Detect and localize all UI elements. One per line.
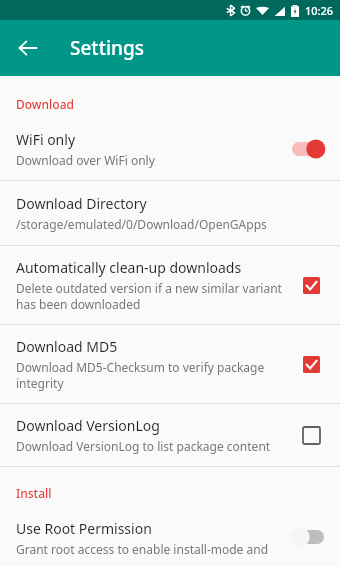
staticText: 10:26 [305,3,334,18]
staticText: Download Directory [16,194,147,213]
button[interactable]: Unchecked [298,422,324,448]
staticText: Download VersionLog to list package cont… [16,438,271,454]
button[interactable]: Download VersionLog [0,404,340,466]
staticText: Install [16,485,52,501]
button[interactable]: Checked [298,272,324,298]
staticText: Download [16,96,74,112]
staticText: WiFi only [16,130,76,149]
button[interactable]: WiFi only [0,118,340,180]
button[interactable]: Checked [298,351,324,377]
staticText: Grant root access to enable install-mode… [16,541,276,554]
staticText: /storage/emulated/0/Download/OpenGApps [16,216,267,232]
staticText: Settings [70,35,144,61]
button[interactable]: Back [8,28,48,68]
button[interactable]: Download Directory [0,181,340,245]
button[interactable]: Use Root Permission [0,507,340,566]
button[interactable]: Download MD5 [0,325,340,403]
staticText: Automatically clean-up downloads [16,258,242,277]
button[interactable]: Automatically clean-up downloads [0,246,340,324]
staticText: Download over WiFi only [16,152,155,168]
staticText: Delete outdated version if a new similar… [16,280,286,312]
staticText: Download VersionLog [16,416,160,435]
staticText: Download MD5-Checksum to verify package … [16,359,286,391]
button[interactable]: On [288,137,328,161]
staticText: Download MD5 [16,337,118,356]
staticText: Use Root Permission [16,519,152,538]
button[interactable]: Off [288,525,328,549]
